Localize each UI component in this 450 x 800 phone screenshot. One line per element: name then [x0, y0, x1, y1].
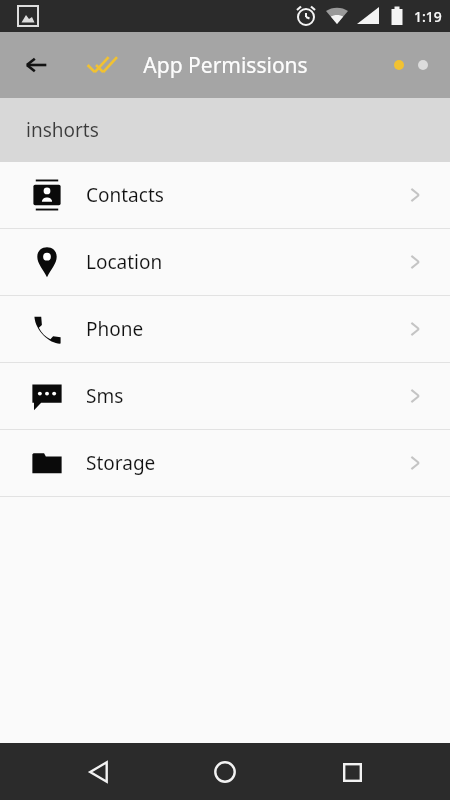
staticText: Contacts: [86, 182, 406, 208]
button[interactable]: Contacts: [0, 162, 450, 228]
button[interactable]: Sms: [0, 363, 450, 429]
staticText: 1:19: [414, 7, 442, 26]
staticText: App Permissions: [143, 51, 308, 80]
staticText: Storage: [86, 450, 406, 476]
button[interactable]: Phone: [0, 296, 450, 362]
staticText: inshorts: [26, 117, 99, 143]
staticText: Phone: [86, 316, 406, 342]
button[interactable]: Storage: [0, 430, 450, 496]
button[interactable]: Recent apps: [324, 744, 380, 800]
button[interactable]: Grant all permissions: [80, 43, 124, 87]
button[interactable]: Back: [12, 41, 60, 89]
staticText: Sms: [86, 383, 406, 409]
button[interactable]: Location: [0, 229, 450, 295]
staticText: Location: [86, 249, 406, 275]
button[interactable]: Home: [197, 744, 253, 800]
button[interactable]: Back: [71, 744, 127, 800]
